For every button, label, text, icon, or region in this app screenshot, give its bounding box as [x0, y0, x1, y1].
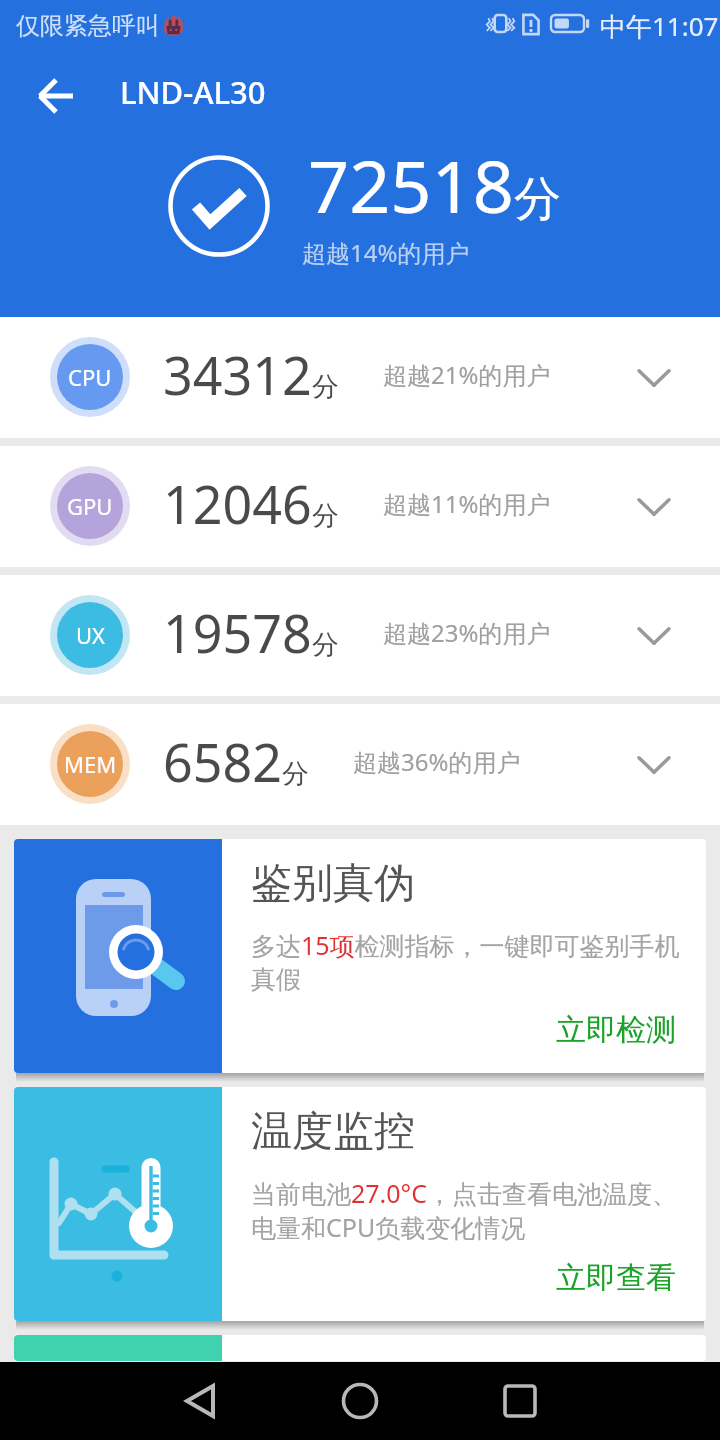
staticText: 当前电池27.0°C，点击查看电池温度、电量和CPU负载变化情况	[251, 1176, 689, 1244]
button[interactable]: Expand	[624, 735, 684, 795]
button[interactable]: MEM	[0, 704, 720, 825]
staticText: 6582	[163, 726, 282, 797]
staticText: 立即查看	[556, 1259, 676, 1297]
button[interactable]: Expand	[624, 477, 684, 537]
staticText: 中午11:07	[600, 8, 719, 44]
button[interactable]: 鉴别真伪	[14, 839, 706, 1073]
staticText: 鉴别真伪	[251, 858, 415, 910]
staticText: 分	[514, 170, 561, 229]
staticText: 仅限紧急呼叫	[16, 11, 160, 41]
staticText: 72518	[308, 136, 514, 234]
staticText: 超越21%的用户	[383, 358, 551, 391]
button[interactable]: Back	[140, 1362, 260, 1440]
staticText: MEM	[64, 749, 117, 779]
button[interactable]: CPU	[0, 317, 720, 438]
staticText: 19578	[163, 597, 312, 668]
staticText: 34312	[163, 339, 312, 410]
staticText: 超越23%的用户	[383, 616, 551, 649]
staticText: CPU	[68, 362, 112, 392]
button[interactable]: Recents	[460, 1362, 580, 1440]
staticText: 分	[312, 499, 339, 533]
button[interactable]	[14, 1335, 706, 1361]
button[interactable]: GPU	[0, 446, 720, 567]
staticText: 超越36%的用户	[353, 745, 521, 778]
staticText: 温度监控	[251, 1106, 415, 1158]
button[interactable]: Home	[300, 1362, 420, 1440]
staticText: 12046	[163, 468, 312, 539]
button[interactable]: Expand	[624, 606, 684, 666]
button[interactable]: 立即查看	[546, 1249, 686, 1307]
staticText: 分	[312, 628, 339, 662]
button[interactable]: 温度监控	[14, 1087, 706, 1321]
staticText: LND-AL30	[120, 71, 266, 113]
staticText: UX	[76, 620, 105, 650]
staticText: 分	[282, 757, 309, 791]
staticText: 分	[312, 370, 339, 404]
button[interactable]: 立即检测	[546, 1001, 686, 1059]
button[interactable]: UX	[0, 575, 720, 696]
staticText: 立即检测	[556, 1011, 676, 1049]
button[interactable]: Expand	[624, 348, 684, 408]
staticText: 超越14%的用户	[302, 236, 470, 269]
staticText: GPU	[67, 491, 113, 521]
button[interactable]: Back	[22, 62, 90, 130]
staticText: 超越11%的用户	[383, 487, 551, 520]
staticText: 多达15项检测指标，一键即可鉴别手机真假	[251, 928, 689, 995]
